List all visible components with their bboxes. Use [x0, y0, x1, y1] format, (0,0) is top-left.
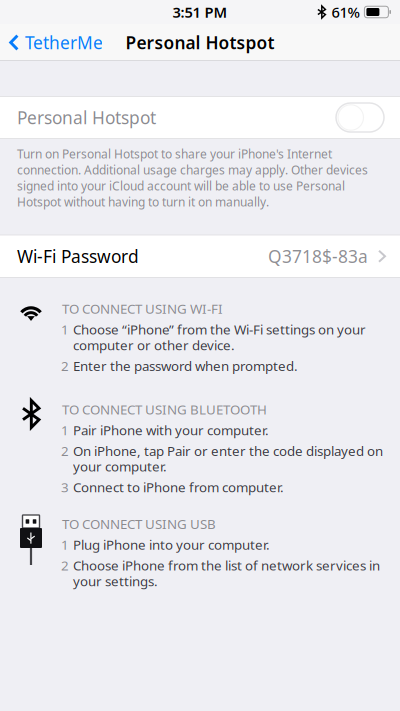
staticText: TO CONNECT USING USB [62, 515, 216, 533]
staticText: Choose iPhone from the list of network s… [73, 556, 380, 590]
staticText: 3:51 PM [172, 2, 227, 22]
staticText: 2 [61, 442, 69, 460]
staticText: 3 [61, 478, 69, 496]
staticText: Enter the password when prompted. [73, 357, 298, 375]
staticText: Personal Hotspot [125, 31, 274, 54]
staticText: TO CONNECT USING BLUETOOTH [62, 400, 267, 418]
staticText: Plug iPhone into your computer. [73, 536, 270, 553]
staticText: TO CONNECT USING WI-FI [62, 300, 223, 317]
staticText: Connect to iPhone from computer. [73, 478, 284, 496]
staticText: 1 [61, 536, 69, 553]
staticText: 2 [61, 357, 69, 375]
staticText: Turn on Personal Hotspot to share your i… [17, 146, 368, 210]
staticText: Personal Hotspot [17, 106, 156, 129]
staticText: TetherMe [25, 31, 103, 54]
staticText: Choose “iPhone” from the Wi-Fi settings … [73, 320, 366, 354]
staticText: On iPhone, tap Pair or enter the code di… [73, 442, 383, 475]
staticText: Wi-Fi Password [17, 245, 139, 268]
staticText: 1 [61, 421, 69, 439]
staticText: Q3718$-83a [268, 245, 368, 268]
staticText: 1 [61, 320, 69, 338]
button[interactable]: Wi-Fi Password [0, 235, 400, 278]
button[interactable]: Personal Hotspot [0, 96, 400, 139]
staticText: 2 [61, 556, 69, 574]
button[interactable]: TetherMe [0, 24, 113, 61]
staticText: Pair iPhone with your computer. [73, 421, 269, 439]
staticText: 61% [331, 2, 359, 22]
